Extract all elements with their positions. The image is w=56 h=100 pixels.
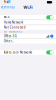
button[interactable]: Office-5G — [0, 34, 56, 38]
staticText: Not Connected — [4, 26, 26, 29]
button[interactable]: Wi-Fi — [0, 15, 56, 20]
staticText: Settings — [3, 5, 14, 9]
staticText: Ask to Join Networks — [4, 51, 32, 54]
staticText: i — [51, 34, 52, 38]
button[interactable]: Ask to Join Networks — [0, 50, 56, 55]
button[interactable]: HomeNetwork — [0, 20, 56, 25]
staticText: HomeNetwork — [4, 21, 23, 24]
button[interactable]: Other… — [0, 39, 56, 43]
button[interactable]: Settings — [0, 4, 14, 10]
staticText: MY NETWORKS — [4, 30, 22, 33]
staticText: 9:41 — [4, 0, 11, 4]
staticText: Wi-Fi — [23, 4, 32, 10]
staticText: Wi-Fi — [4, 16, 10, 19]
staticText: Other… — [4, 39, 14, 43]
button[interactable]: Not Connected — [0, 25, 56, 30]
staticText: Office-5G — [4, 34, 17, 38]
